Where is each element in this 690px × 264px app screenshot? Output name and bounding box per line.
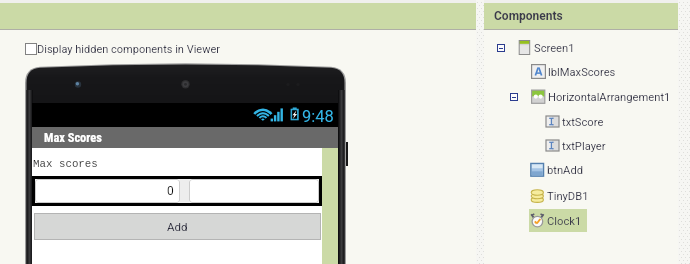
staticText: Clock1 [547, 215, 582, 228]
staticText: txtScore [562, 116, 604, 129]
staticText: Max Scores [44, 130, 102, 145]
staticText: Screen1 [534, 42, 575, 55]
button[interactable]: Clock1 [530, 209, 582, 232]
staticText: TinyDB1 [547, 190, 589, 203]
staticText: 0 [167, 184, 174, 198]
staticText: Add [167, 220, 188, 233]
staticText: lblMaxScores [548, 66, 616, 79]
button[interactable]: Screen1 [517, 36, 575, 59]
button[interactable]: HorizontalArrangement1 [531, 85, 671, 108]
staticText: Display hidden components in Viewer [37, 43, 220, 56]
button[interactable]: Add [34, 213, 321, 240]
button[interactable]: txtPlayer [545, 134, 606, 157]
button[interactable]: Collapse [497, 44, 505, 52]
button[interactable]: 0 [35, 179, 180, 203]
staticText: Max scores [33, 158, 98, 170]
button[interactable]: TinyDB1 [530, 184, 589, 207]
button[interactable]: btnAdd [530, 158, 584, 181]
staticText: txtPlayer [562, 140, 606, 153]
staticText: btnAdd [547, 164, 584, 177]
staticText: 9:48 [302, 107, 334, 126]
button[interactable]: Display hidden components in Viewer [25, 42, 220, 56]
button[interactable] [189, 179, 319, 203]
button[interactable]: Collapse [510, 93, 518, 101]
staticText: Components [494, 9, 563, 23]
button[interactable]: lblMaxScores [531, 60, 616, 83]
button[interactable]: txtScore [545, 110, 604, 133]
staticText: HorizontalArrangement1 [548, 91, 671, 104]
